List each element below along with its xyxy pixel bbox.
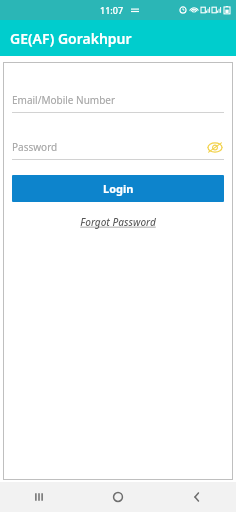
button[interactable]: Login bbox=[12, 175, 224, 202]
button[interactable]: Email/Mobile Number bbox=[12, 93, 224, 113]
button[interactable]: Show password bbox=[206, 140, 224, 154]
button[interactable]: Home bbox=[78, 482, 157, 512]
button[interactable]: Password bbox=[12, 140, 224, 160]
staticText: Login bbox=[103, 181, 134, 196]
staticText: 11:07 bbox=[100, 4, 124, 16]
staticText: Email/Mobile Number bbox=[12, 93, 224, 107]
staticText: Forgot Password bbox=[80, 215, 156, 229]
staticText: Password bbox=[12, 140, 206, 154]
staticText: GE(AF) Gorakhpur bbox=[10, 29, 132, 48]
button[interactable]: Recent apps bbox=[0, 482, 78, 512]
button[interactable]: Back bbox=[157, 482, 236, 512]
button[interactable]: Forgot Password bbox=[74, 213, 162, 231]
